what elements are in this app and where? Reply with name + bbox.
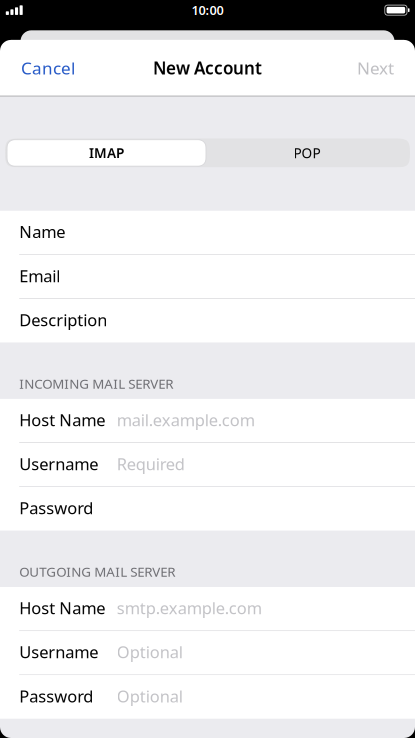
- staticText: Host Name: [19, 597, 105, 619]
- staticText: Email: [19, 265, 60, 287]
- staticText: Description: [19, 309, 107, 331]
- staticText: smtp.example.com: [117, 597, 262, 619]
- button[interactable]: Username: [0, 631, 415, 674]
- staticText: New Account: [153, 57, 262, 79]
- button[interactable]: POP: [206, 140, 408, 166]
- staticText: Password: [19, 685, 93, 707]
- button[interactable]: Description: [0, 299, 415, 342]
- staticText: Host Name: [19, 409, 105, 431]
- button[interactable]: Next: [349, 46, 402, 90]
- button[interactable]: Host Name: [0, 587, 415, 630]
- staticText: Optional: [117, 641, 183, 663]
- staticText: IMAP: [89, 144, 124, 162]
- staticText: 10:00: [191, 2, 223, 19]
- staticText: Password: [19, 497, 93, 519]
- button[interactable]: Password: [0, 487, 415, 530]
- staticText: POP: [293, 144, 320, 162]
- button[interactable]: Username: [0, 443, 415, 486]
- staticText: Required: [117, 453, 185, 475]
- staticText: Cancel: [21, 57, 75, 79]
- staticText: mail.example.com: [117, 409, 255, 431]
- staticText: INCOMING MAIL SERVER: [19, 375, 173, 392]
- staticText: Optional: [117, 685, 183, 707]
- staticText: Username: [19, 453, 98, 475]
- staticText: Username: [19, 641, 98, 663]
- staticText: OUTGOING MAIL SERVER: [19, 563, 175, 580]
- staticText: Next: [357, 57, 394, 79]
- button[interactable]: Cancel: [13, 46, 83, 90]
- button[interactable]: Email: [0, 255, 415, 298]
- button[interactable]: Name: [0, 211, 415, 254]
- button[interactable]: Host Name: [0, 399, 415, 442]
- button[interactable]: Password: [0, 675, 415, 718]
- button[interactable]: IMAP: [7, 140, 206, 166]
- staticText: Name: [19, 221, 65, 243]
